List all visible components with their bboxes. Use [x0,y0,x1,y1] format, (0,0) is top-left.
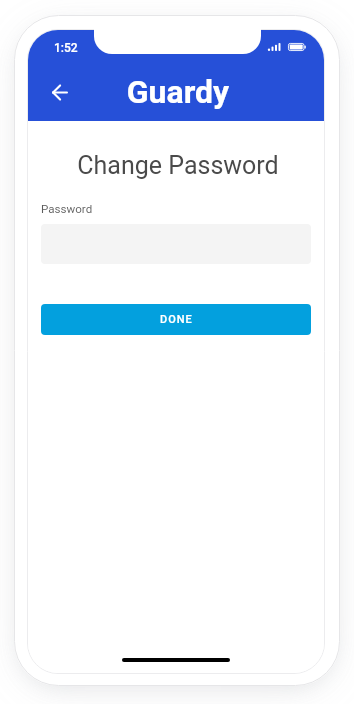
staticText: 1:52 [54,41,78,55]
button[interactable]: DONE [41,304,311,335]
staticText: Password [41,202,93,216]
button[interactable]: Back [40,72,80,112]
staticText: Change Password [30,151,324,180]
staticText: DONE [160,313,193,326]
staticText: Guardy [30,73,324,111]
